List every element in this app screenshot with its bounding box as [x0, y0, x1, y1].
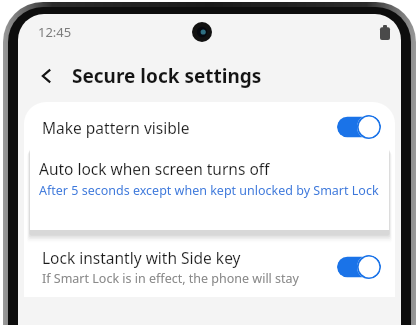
staticText: If Smart Lock is in effect, the phone wi…	[42, 270, 299, 287]
button[interactable]: Auto lock when screen turns off	[30, 148, 389, 230]
button[interactable]: Toggle on	[337, 255, 381, 279]
staticText: Lock instantly with Side key	[42, 247, 241, 268]
staticText: 12:45	[38, 23, 72, 41]
button[interactable]: Make pattern visible	[24, 102, 395, 152]
staticText: Make pattern visible	[42, 117, 337, 138]
staticText: After 5 seconds except when kept unlocke…	[39, 182, 379, 199]
staticText: Auto lock when screen turns off	[39, 158, 270, 179]
button[interactable]: Lock instantly with Side key	[24, 237, 395, 297]
button[interactable]: Toggle on	[337, 115, 381, 139]
button[interactable]: Back	[31, 60, 63, 92]
staticText: Secure lock settings	[72, 63, 262, 89]
